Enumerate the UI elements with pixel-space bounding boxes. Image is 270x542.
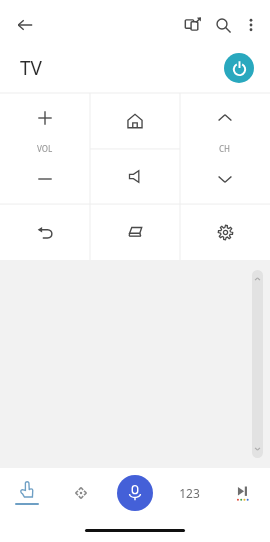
button[interactable]: Touchpad <box>0 260 270 468</box>
button[interactable]: Media controls <box>216 468 270 518</box>
button[interactable]: D-pad <box>54 468 108 518</box>
button[interactable]: Volume down <box>0 154 90 204</box>
button[interactable]: Voice search <box>117 475 153 511</box>
button[interactable]: Settings <box>180 204 270 260</box>
button[interactable]: Channel down <box>180 154 270 204</box>
button[interactable]: Cast to device <box>178 10 208 40</box>
button[interactable]: Input source <box>90 204 180 260</box>
button[interactable]: Back <box>10 10 40 40</box>
button[interactable]: 123 <box>162 468 216 518</box>
button[interactable]: More options <box>238 12 264 38</box>
staticText: 123 <box>179 485 200 501</box>
button[interactable]: Search <box>208 10 238 40</box>
staticText: CH <box>219 143 231 154</box>
button[interactable]: Channel up <box>180 93 270 143</box>
button[interactable]: Back <box>0 204 90 260</box>
staticText: VOL <box>37 143 53 154</box>
button[interactable]: Home <box>90 93 180 148</box>
button[interactable]: Touchpad <box>0 468 54 518</box>
button[interactable]: Mute <box>90 148 180 204</box>
staticText: TV <box>20 55 42 81</box>
button[interactable]: Volume up <box>0 93 90 143</box>
button[interactable]: Power <box>224 53 254 83</box>
